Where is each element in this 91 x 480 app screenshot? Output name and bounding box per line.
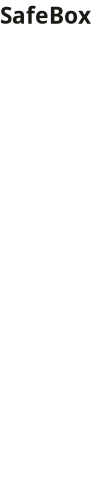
staticText: SafeBox (0, 0, 91, 30)
